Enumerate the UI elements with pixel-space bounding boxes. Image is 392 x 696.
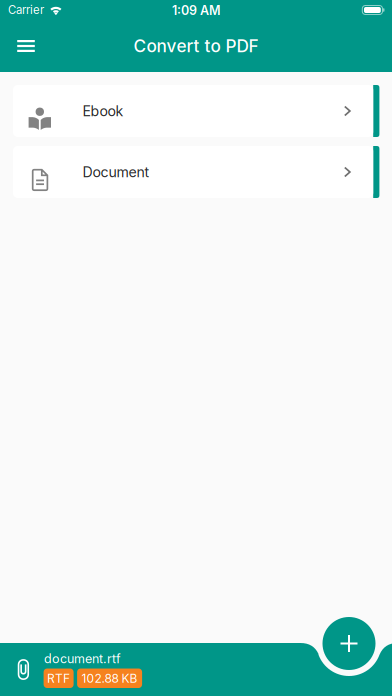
staticText: Ebook xyxy=(82,102,123,119)
button[interactable]: Menu xyxy=(4,24,48,68)
staticText: document.rtf xyxy=(44,651,121,666)
staticText: Carrier xyxy=(8,3,44,17)
button[interactable]: Document xyxy=(13,146,379,198)
staticText: 1:09 AM xyxy=(172,3,221,18)
staticText: 102.88 KB xyxy=(82,671,138,685)
button[interactable]: Ebook xyxy=(13,85,379,137)
button[interactable]: Add xyxy=(322,617,375,670)
staticText: RTF xyxy=(47,671,70,685)
staticText: Convert to PDF xyxy=(133,36,258,56)
staticText: Document xyxy=(82,163,149,180)
